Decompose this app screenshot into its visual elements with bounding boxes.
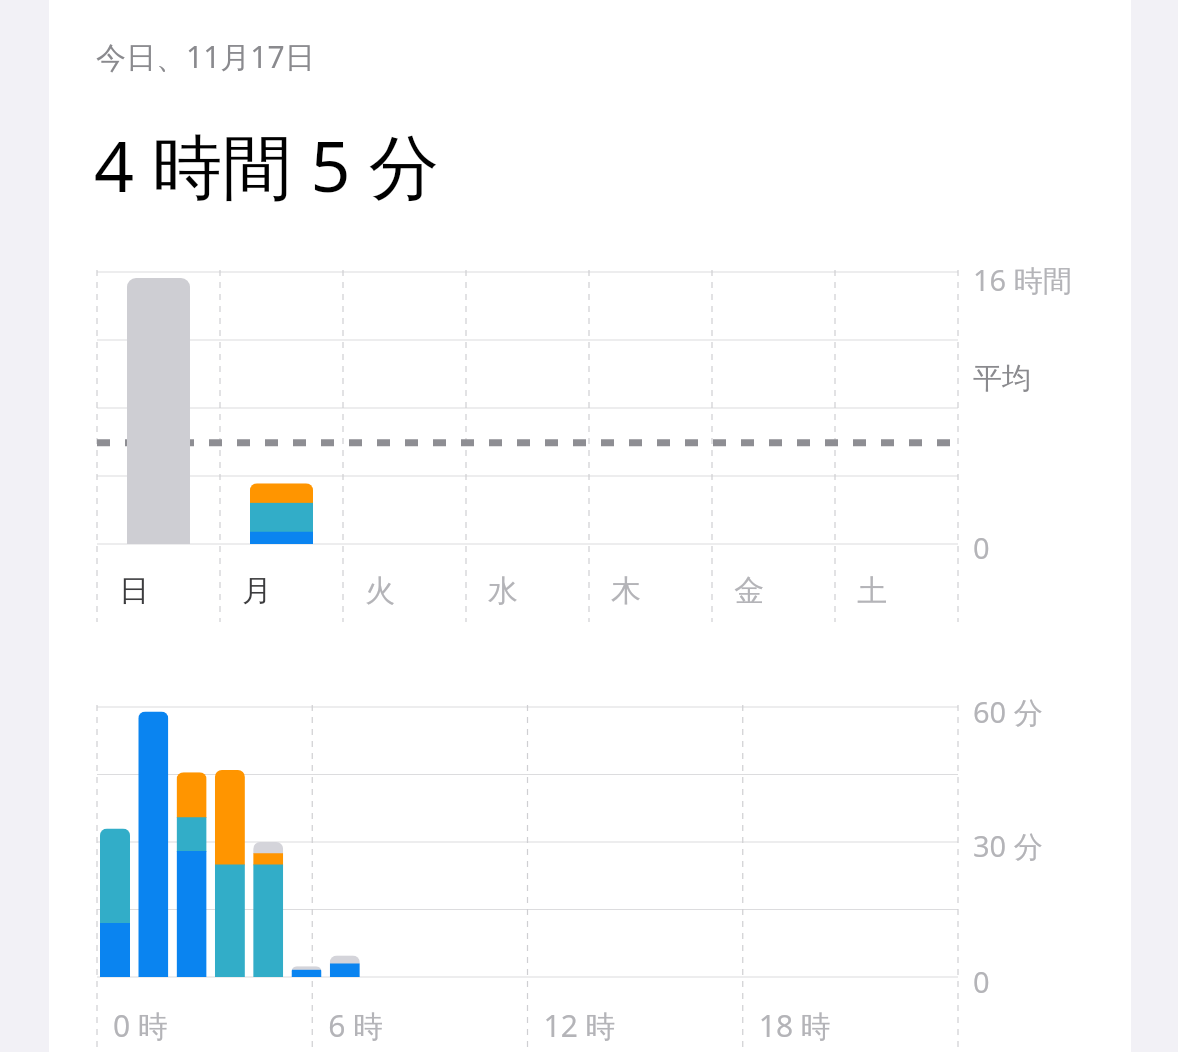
button[interactable]: 週間睡眠グラフ (49, 260, 989, 620)
button[interactable]: 時間別睡眠グラフ (49, 690, 989, 1050)
